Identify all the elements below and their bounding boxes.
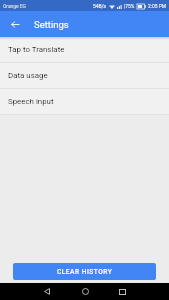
staticText: 54B/s xyxy=(93,3,107,9)
staticText: Data usage xyxy=(8,71,48,80)
staticText: Settings xyxy=(34,19,69,30)
button[interactable]: CLEAR HISTORY xyxy=(13,263,156,280)
button[interactable]: Back xyxy=(37,283,57,300)
staticText: 2:05 PM xyxy=(148,3,166,9)
staticText: Tap to Translate xyxy=(8,45,65,54)
staticText: Orange EG xyxy=(3,3,26,9)
button[interactable]: Recent apps xyxy=(112,283,132,300)
staticText: |75% xyxy=(124,3,135,9)
staticText: Speech input xyxy=(8,97,54,106)
staticText: CLEAR HISTORY xyxy=(57,268,113,276)
button[interactable]: Tap to Translate xyxy=(0,37,169,62)
button[interactable]: Home xyxy=(75,283,95,300)
button[interactable]: Data usage xyxy=(0,63,169,88)
button[interactable]: Navigate up xyxy=(6,16,23,33)
button[interactable]: Speech input xyxy=(0,89,169,114)
